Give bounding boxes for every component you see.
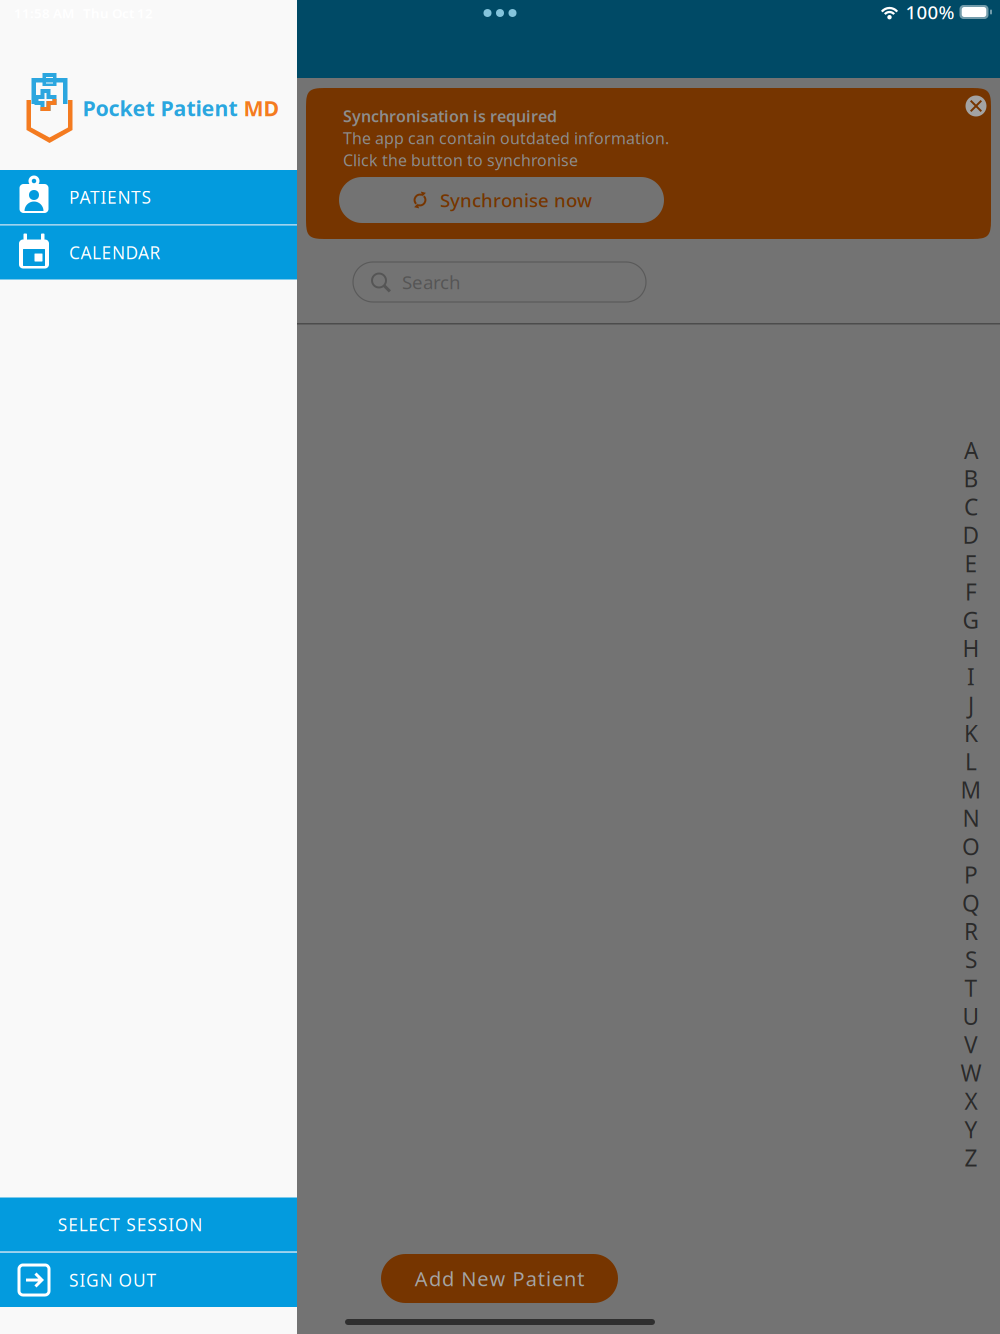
staticText: F — [965, 577, 977, 607]
button[interactable]: L — [951, 747, 991, 776]
staticText: J — [968, 690, 974, 720]
button[interactable]: J — [951, 691, 991, 719]
button[interactable]: K — [951, 719, 991, 747]
staticText: E — [964, 548, 977, 578]
staticText: O — [962, 831, 980, 861]
staticText: Q — [962, 888, 980, 918]
button[interactable]: PATIENTS — [0, 170, 297, 224]
staticText: The app can contain outdated information… — [343, 127, 669, 149]
staticText: Synchronise now — [440, 188, 592, 212]
staticText: A — [964, 435, 978, 465]
staticText: G — [962, 605, 979, 635]
button[interactable]: CALENDAR — [0, 225, 297, 279]
staticText: R — [964, 916, 978, 946]
staticText: 100% — [905, 0, 954, 24]
staticText: N — [962, 803, 979, 833]
staticText: SIGN OUT — [69, 1268, 156, 1291]
staticText: Add New Patient — [415, 1265, 584, 1292]
button[interactable]: P — [951, 860, 991, 889]
staticText: Search — [402, 270, 461, 294]
staticText: I — [967, 661, 975, 692]
staticText: CALENDAR — [69, 241, 160, 264]
staticText: Synchronisation is required — [343, 105, 557, 127]
button[interactable]: M — [951, 776, 991, 804]
button[interactable]: Z — [951, 1143, 991, 1172]
button[interactable]: O — [951, 832, 991, 860]
button[interactable]: A — [951, 436, 991, 464]
staticText: X — [964, 1086, 977, 1116]
button[interactable]: G — [951, 606, 991, 634]
button[interactable]: T — [951, 974, 991, 1002]
staticText: PATIENTS — [69, 185, 151, 208]
button[interactable]: Dismiss — [961, 91, 991, 121]
staticText: SELECT SESSION — [58, 1213, 202, 1236]
button[interactable]: E — [951, 549, 991, 577]
staticText: B — [963, 463, 978, 493]
staticText: H — [962, 633, 979, 663]
staticText: T — [964, 973, 977, 1003]
staticText: M — [960, 775, 981, 805]
staticText: C — [964, 492, 978, 522]
button[interactable]: H — [951, 634, 991, 662]
button[interactable]: I — [951, 662, 991, 691]
button[interactable]: V — [951, 1030, 991, 1059]
staticText: P — [964, 860, 978, 890]
staticText: Z — [964, 1143, 977, 1173]
staticText: K — [964, 718, 978, 748]
staticText: W — [960, 1058, 981, 1088]
staticText: U — [962, 1001, 979, 1031]
button[interactable]: SELECT SESSION — [0, 1197, 297, 1251]
staticText: Pocket Patient — [82, 94, 237, 122]
button[interactable]: D — [951, 521, 991, 549]
button[interactable]: B — [951, 464, 991, 493]
button[interactable]: U — [951, 1002, 991, 1030]
staticText: Y — [964, 1114, 977, 1144]
button[interactable]: R — [951, 917, 991, 945]
button[interactable]: Synchronise now — [343, 177, 668, 223]
button[interactable]: N — [951, 804, 991, 832]
button[interactable]: Y — [951, 1115, 991, 1143]
button[interactable]: C — [951, 493, 991, 521]
button[interactable]: X — [951, 1087, 991, 1115]
button[interactable]: SIGN OUT — [0, 1253, 297, 1307]
staticText: V — [964, 1029, 978, 1059]
staticText: D — [962, 520, 979, 550]
button[interactable]: Q — [951, 889, 991, 917]
button[interactable]: F — [951, 577, 991, 606]
staticText: Click the button to synchronise — [343, 149, 578, 171]
button[interactable]: W — [951, 1059, 991, 1087]
staticText: MD — [237, 94, 279, 122]
button[interactable]: Add New Patient — [381, 1254, 618, 1303]
staticText: S — [965, 944, 977, 975]
button[interactable]: S — [951, 945, 991, 974]
staticText: L — [965, 746, 977, 776]
